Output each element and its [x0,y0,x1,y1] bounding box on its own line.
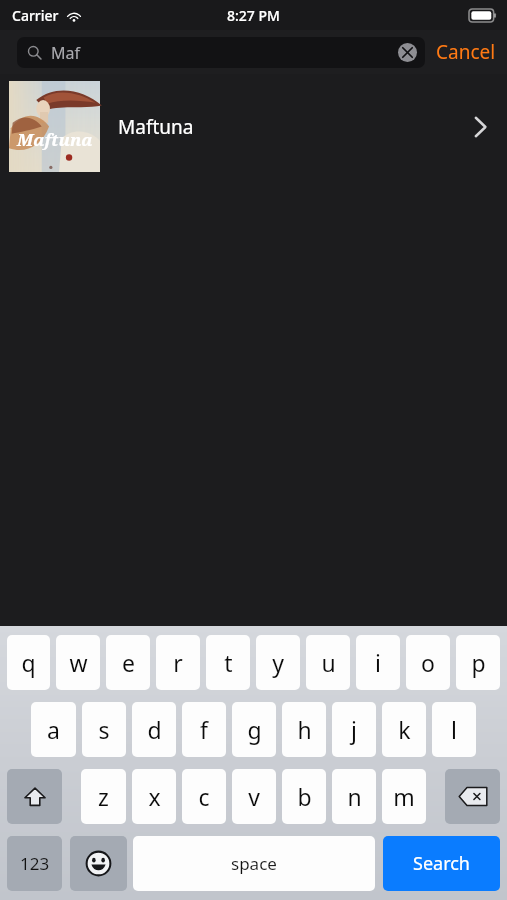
button[interactable]: space [133,836,375,891]
staticText: k [398,714,411,745]
staticText: v [248,781,260,812]
staticText: p [471,647,486,678]
button[interactable]: m [382,769,426,824]
staticText: h [297,714,312,745]
button[interactable]: i [356,635,400,690]
button[interactable]: w [56,635,100,690]
staticText: x [148,781,161,812]
button[interactable]: Clear text [398,43,417,62]
button[interactable]: Search [383,836,500,891]
button[interactable]: o [406,635,450,690]
staticText: 8:27 PM [227,6,280,25]
button[interactable]: 123 [7,836,62,891]
staticText: j [351,714,357,745]
staticText: u [321,647,336,678]
staticText: f [200,714,208,745]
button[interactable]: e [106,635,150,690]
button[interactable]: f [182,702,226,757]
button[interactable]: l [432,702,476,757]
staticText: m [393,781,415,812]
button[interactable]: q [7,635,50,690]
staticText: 123 [20,852,50,875]
button[interactable]: b [282,769,326,824]
button[interactable]: h [282,702,326,757]
staticText: e [122,647,135,678]
button[interactable]: k [382,702,426,757]
staticText: b [297,781,312,812]
staticText: r [173,647,183,678]
button[interactable]: r [156,635,200,690]
button[interactable]: Maftuna [0,74,507,179]
staticText: z [98,781,109,812]
staticText: n [347,781,362,812]
staticText: l [451,714,457,745]
button[interactable]: Emoji [70,836,127,891]
button[interactable]: c [182,769,226,824]
button[interactable]: y [256,635,300,690]
button[interactable]: Backspace [445,769,500,824]
staticText: o [421,647,435,678]
other: Open Maftuna [474,116,487,138]
button[interactable]: s [82,702,126,757]
button[interactable]: p [456,635,500,690]
button[interactable]: Cancel [425,30,507,74]
staticText: c [198,781,210,812]
staticText: y [272,647,284,678]
staticText: i [375,647,381,678]
staticText: d [147,714,162,745]
button[interactable]: g [232,702,276,757]
staticText: Maftuna [118,114,194,140]
staticText: space [231,852,277,875]
button[interactable]: x [132,769,176,824]
button[interactable]: n [332,769,376,824]
staticText: Maftuna [17,128,93,151]
staticText: Cancel [436,39,496,65]
button[interactable]: z [81,769,126,824]
staticText: Maf [51,42,80,64]
staticText: q [21,647,36,678]
button[interactable]: u [306,635,350,690]
staticText: Carrier [12,6,59,25]
button[interactable]: v [232,769,276,824]
staticText: g [247,714,262,745]
staticText: Search [413,851,470,876]
staticText: w [69,647,88,678]
button[interactable]: a [31,702,76,757]
button[interactable]: d [132,702,176,757]
button[interactable]: t [206,635,250,690]
button[interactable]: Maf [17,37,425,68]
staticText: a [47,714,60,745]
button[interactable]: Shift [7,769,62,824]
staticText: t [224,647,233,678]
staticText: s [98,714,110,745]
button[interactable]: j [332,702,376,757]
